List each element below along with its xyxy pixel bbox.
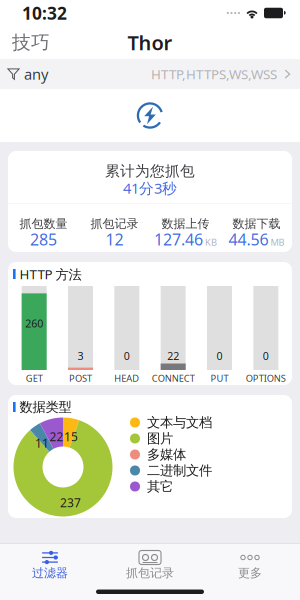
button[interactable]: any [0,59,300,89]
staticText: 11 [35,435,49,451]
staticText: 285 [30,229,57,250]
staticText: CONNECT [152,372,195,384]
staticText: 0 [216,349,222,363]
staticText: 文本与文档 [147,414,212,431]
button[interactable]: 更多 [200,543,300,581]
staticText: 图片 [147,430,173,447]
staticText: 抓包记录 [126,566,174,580]
staticText: 其它 [147,478,173,495]
staticText: 41分3秒 [123,178,177,198]
staticText: 多媒体 [147,446,186,463]
staticText: PUT [210,372,228,384]
staticText: 0 [263,349,269,363]
staticText: 技巧 [12,31,50,54]
staticText: MB [270,236,284,248]
staticText: 44.56 [228,229,268,250]
staticText: 数据类型 [20,399,72,415]
staticText: HEAD [114,372,139,384]
button[interactable]: 过滤器 [0,543,100,581]
staticText: any [24,64,48,84]
staticText: 260 [25,316,43,330]
staticText: 127.46 [154,229,203,250]
staticText: 3 [77,349,83,363]
staticText: HTTP,HTTPS,WS,WSS [151,65,277,83]
staticText: 22 [167,349,179,363]
staticText: 抓包记录 [90,216,138,231]
staticText: 12 [105,229,123,250]
staticText: 10:32 [22,1,67,24]
staticText: HTTP 方法 [20,265,82,283]
staticText: 更多 [238,566,262,580]
staticText: Thor [127,29,172,56]
staticText: 累计为您抓包 [105,162,195,180]
staticText: 0 [124,349,130,363]
staticText: 22 [49,428,63,444]
staticText: 抓包数量 [19,216,67,231]
staticText: 二进制文件 [147,462,212,479]
button[interactable]: 技巧 [0,26,60,59]
button[interactable]: 抓包记录 [100,543,200,581]
staticText: 237 [60,494,81,510]
staticText: 数据下载 [232,216,280,231]
staticText: OPTIONS [246,372,286,384]
staticText: 15 [64,428,78,444]
staticText: 数据上传 [161,216,209,231]
staticText: 过滤器 [32,566,68,580]
staticText: POST [69,372,92,384]
staticText: GET [26,372,43,384]
staticText: KB [205,236,217,248]
